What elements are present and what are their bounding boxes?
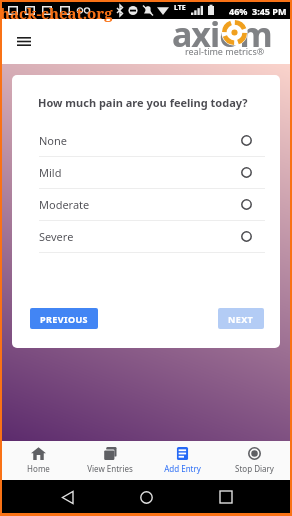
button[interactable]: View Entries [74, 441, 146, 480]
button[interactable]: NEXT [218, 308, 264, 329]
staticText: How much pain are you feeling today? [38, 95, 248, 110]
button[interactable]: Severe [12, 221, 280, 253]
staticText: 3:45 PM [252, 5, 287, 17]
button[interactable]: Add Entry [146, 441, 218, 480]
button[interactable]: PREVIOUS [30, 308, 98, 329]
button[interactable]: Moderate [12, 189, 280, 221]
button[interactable]: Home [131, 482, 161, 512]
staticText: LTE [174, 3, 186, 13]
button[interactable]: Home [2, 441, 74, 480]
staticText: 46% [229, 5, 248, 17]
button[interactable]: None [12, 125, 280, 157]
staticText: Moderate [39, 197, 90, 212]
staticText: View Entries [87, 463, 133, 474]
button[interactable]: Mild [12, 157, 280, 189]
staticText: Severe [39, 229, 74, 244]
button[interactable]: Recents [211, 482, 241, 512]
staticText: None [39, 133, 68, 148]
button[interactable]: Menu [12, 29, 36, 53]
staticText: NEXT [228, 313, 254, 325]
staticText: PREVIOUS [40, 313, 88, 325]
staticText: hack-cheat.org [0, 3, 113, 23]
staticText: real-time metrics® [185, 45, 265, 57]
button[interactable]: Back [52, 482, 82, 512]
staticText: Mild [39, 165, 62, 180]
button[interactable]: Stop Diary [218, 441, 290, 480]
staticText: Stop Diary [235, 463, 274, 474]
staticText: axiom [172, 11, 272, 56]
staticText: Add Entry [164, 463, 201, 474]
staticText: Home [27, 463, 50, 474]
